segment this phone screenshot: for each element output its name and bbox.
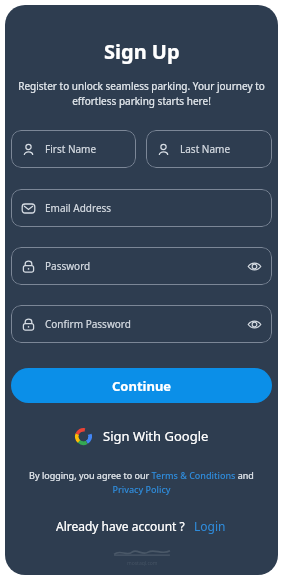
staticText: Register to unlock seamless parking. You… (17, 79, 266, 108)
staticText: First Name (45, 142, 97, 156)
staticText: Login (194, 518, 226, 534)
staticText: Sign Up (104, 38, 180, 65)
staticText: Already have account ? (56, 518, 185, 534)
button[interactable]: Login (192, 516, 228, 536)
staticText: mostaql.com (127, 560, 158, 567)
button[interactable]: Email Address (11, 189, 272, 227)
button[interactable]: First Name (11, 130, 136, 168)
button[interactable]: Password (11, 247, 272, 285)
staticText: Continue (112, 377, 172, 395)
button[interactable]: Continue (11, 368, 272, 403)
other: Toggle password visibility (247, 317, 262, 332)
staticText: Email Address (45, 201, 112, 215)
staticText: Sign With Google (103, 427, 209, 445)
button[interactable]: Last Name (146, 130, 272, 168)
staticText: Last Name (180, 142, 231, 156)
staticText: Confirm Password (45, 317, 131, 331)
staticText: Password (45, 259, 91, 273)
other: Toggle password visibility (247, 259, 262, 274)
staticText: By logging, you agree to our Terms & Con… (19, 469, 264, 496)
button[interactable]: Confirm Password (11, 305, 272, 343)
button[interactable]: Sign With Google (67, 423, 217, 449)
